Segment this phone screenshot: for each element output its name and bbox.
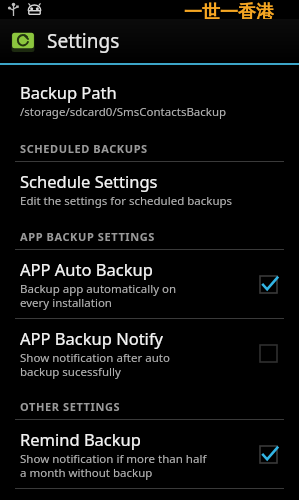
button[interactable]: APP Auto Backup [0,250,299,318]
staticText: Remind Backup [20,428,141,450]
button[interactable]: Unchecked [251,336,285,370]
staticText: APP BACKUP SETTINGS [20,229,155,244]
button[interactable]: Backup Path [0,73,299,128]
staticText: Backup Path [20,81,117,103]
button[interactable]: APP Backup Notify [0,319,299,387]
button[interactable]: Remind Backup [0,420,299,488]
staticText: Show notification if more than half a mo… [20,451,207,480]
button[interactable]: Checked [251,267,285,301]
button[interactable]: Schedule Settings [0,162,299,217]
staticText: 一世一香港 [184,1,274,19]
staticText: OTHER SETTINGS [20,399,121,414]
staticText: /storage/sdcard0/SmsContactsBackup [20,104,227,120]
staticText: Backup app automatically on every instal… [20,281,177,310]
staticText: APP Backup Notify [20,327,163,349]
button[interactable]: Settings [0,19,299,63]
staticText: Schedule Settings [20,170,158,192]
staticText: Edit the settings for scheduled backups [20,193,233,209]
staticText: Show notification after auto backup suce… [20,350,170,379]
button[interactable]: Checked [251,437,285,471]
staticText: SCHEDULED BACKUPS [20,141,148,156]
staticText: Settings [47,28,120,54]
staticText: APP Auto Backup [20,258,153,280]
